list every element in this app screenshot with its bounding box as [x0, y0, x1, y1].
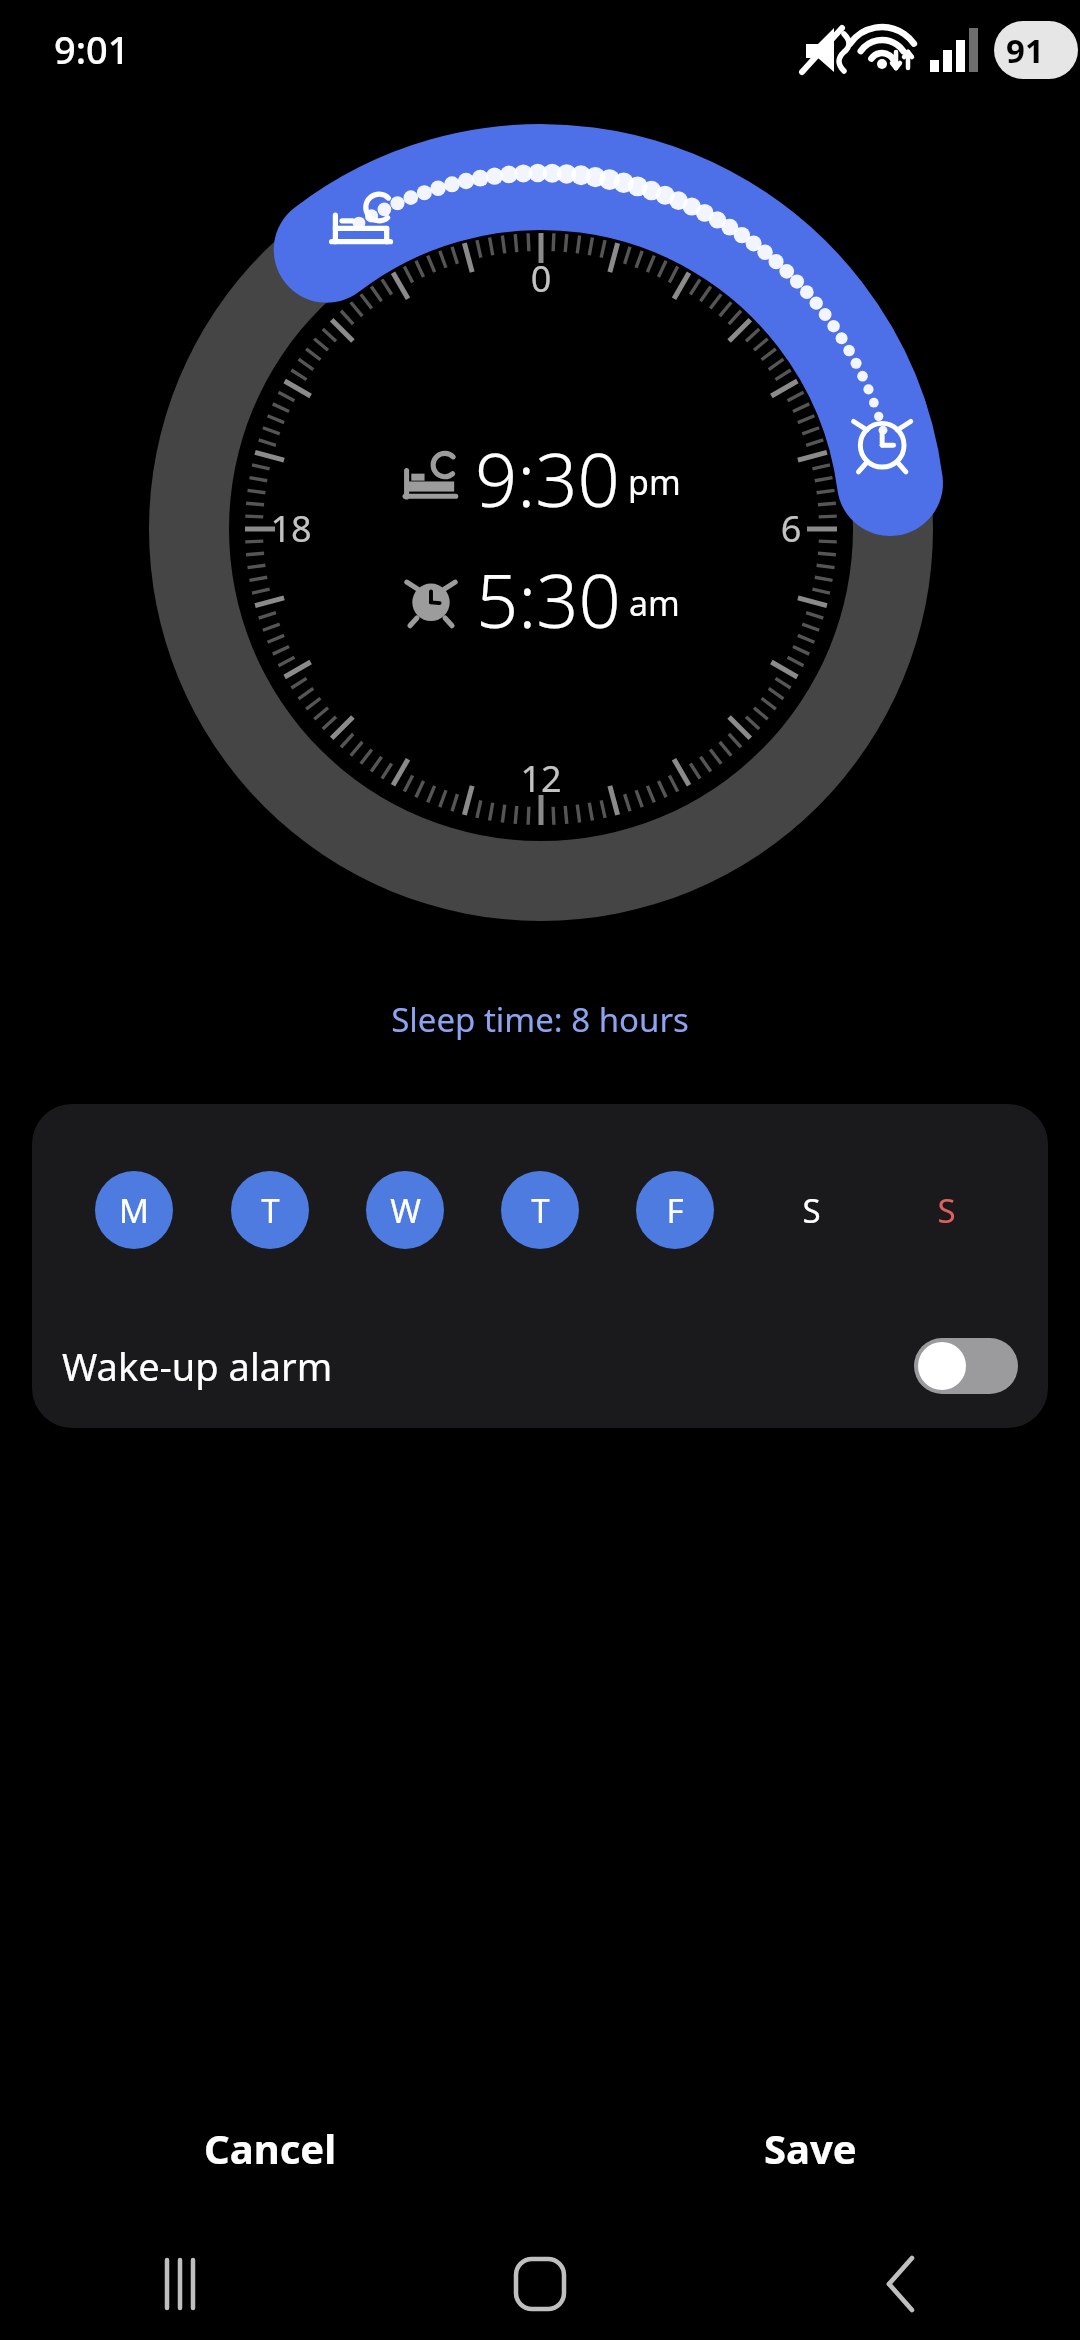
button[interactable]: Home [360, 2228, 720, 2340]
staticText: Wake-up alarm [62, 1340, 333, 1392]
staticText: T [531, 1188, 550, 1233]
staticText: T [261, 1188, 280, 1233]
staticText: Save [764, 2121, 857, 2175]
staticText: F [666, 1188, 684, 1233]
button[interactable]: Save [540, 2100, 1080, 2196]
staticText: 18 [246, 504, 336, 553]
staticText: am [629, 580, 680, 626]
staticText: S [937, 1188, 956, 1233]
staticText: 5:30 [476, 549, 621, 650]
staticText: M [119, 1188, 149, 1233]
button[interactable]: S [907, 1171, 985, 1249]
staticText: W [390, 1188, 421, 1233]
staticText: Sleep time: 8 hours [0, 997, 1080, 1042]
button[interactable]: F [636, 1171, 714, 1249]
button[interactable]: W [366, 1171, 444, 1249]
other: Wake-up alarm toggle [914, 1338, 1018, 1394]
staticText: 6 [746, 504, 836, 553]
staticText: 0 [496, 254, 586, 303]
staticText: S [802, 1188, 821, 1233]
staticText: 12 [496, 754, 586, 803]
staticText: Cancel [204, 2121, 337, 2175]
staticText: pm [628, 459, 681, 505]
staticText: 91 [1006, 28, 1044, 73]
button[interactable]: T [231, 1171, 309, 1249]
staticText: 9:01 [54, 23, 130, 75]
button[interactable]: Back [720, 2228, 1080, 2340]
button[interactable]: M [95, 1171, 173, 1249]
button[interactable]: Recent apps [0, 2228, 360, 2340]
button[interactable]: S [772, 1171, 850, 1249]
button[interactable]: Wake-up alarm [32, 1316, 1048, 1416]
button[interactable]: Cancel [0, 2100, 540, 2196]
button[interactable]: T [501, 1171, 579, 1249]
staticText: 9:30 [475, 428, 620, 529]
